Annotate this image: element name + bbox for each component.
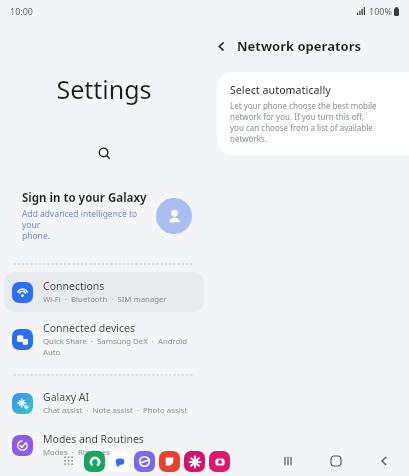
button[interactable]: Back — [208, 33, 234, 59]
staticText: Connections — [43, 279, 105, 293]
button[interactable]: Phone — [84, 451, 105, 472]
staticText: Chat assist · Note assist · Photo assist — [43, 405, 188, 416]
button[interactable]: Home — [323, 448, 349, 474]
button[interactable]: Galaxy AI — [4, 383, 204, 423]
staticText: Wi-Fi · Bluetooth · SIM manager — [43, 294, 167, 305]
staticText: Sign in to your Galaxy — [22, 190, 147, 206]
button[interactable]: Internet — [134, 451, 155, 472]
staticText: Add advanced intelligence to your phone. — [22, 208, 156, 241]
staticText: Network operators — [237, 37, 362, 55]
button[interactable]: Notes — [159, 451, 180, 472]
staticText: Modes and Routines — [43, 432, 144, 446]
staticText: Connected devices — [43, 321, 136, 335]
button[interactable]: Search — [87, 136, 121, 170]
button[interactable]: Select automatically — [218, 72, 409, 155]
button[interactable]: Messages — [109, 451, 130, 472]
button[interactable]: Back — [371, 448, 397, 474]
staticText: Galaxy AI — [43, 390, 90, 404]
button[interactable]: Sign in to your Galaxy — [0, 184, 208, 247]
staticText: Settings — [0, 72, 208, 106]
button[interactable]: Recents — [275, 448, 301, 474]
staticText: Select automatically — [230, 83, 331, 97]
button[interactable]: Modes and Routines — [4, 425, 204, 465]
button[interactable]: Camera — [209, 451, 230, 472]
staticText: Let your phone choose the best mobile ne… — [230, 100, 377, 144]
button[interactable]: Connections — [4, 272, 204, 312]
staticText: 10:00 — [10, 5, 34, 17]
staticText: Quick Share · Samsung DeX · Android Auto — [43, 336, 198, 358]
button[interactable]: Gallery — [184, 451, 205, 472]
staticText: 100% — [369, 5, 392, 17]
staticText: Modes · Routines — [43, 447, 111, 458]
button[interactable]: Connected devices — [4, 314, 204, 365]
button[interactable]: Apps — [58, 450, 80, 472]
